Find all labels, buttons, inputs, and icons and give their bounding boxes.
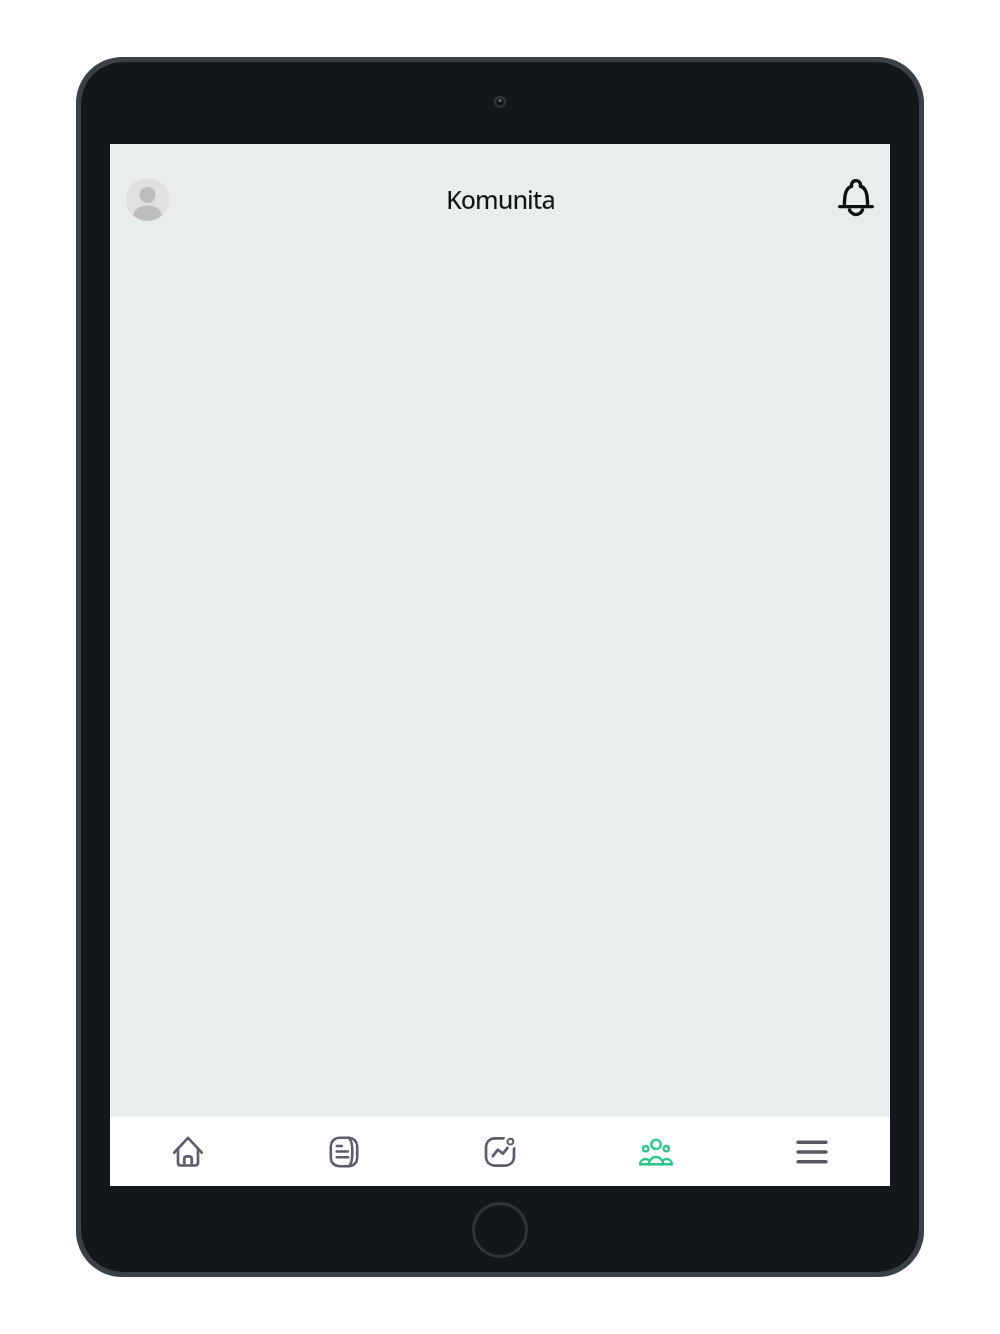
button[interactable] (110, 1117, 266, 1186)
button[interactable] (126, 178, 169, 221)
staticText: Komunita (446, 182, 555, 216)
button[interactable] (422, 1117, 578, 1186)
button[interactable] (834, 176, 878, 220)
button[interactable] (734, 1117, 890, 1186)
button[interactable] (578, 1117, 734, 1186)
button[interactable] (266, 1117, 422, 1186)
